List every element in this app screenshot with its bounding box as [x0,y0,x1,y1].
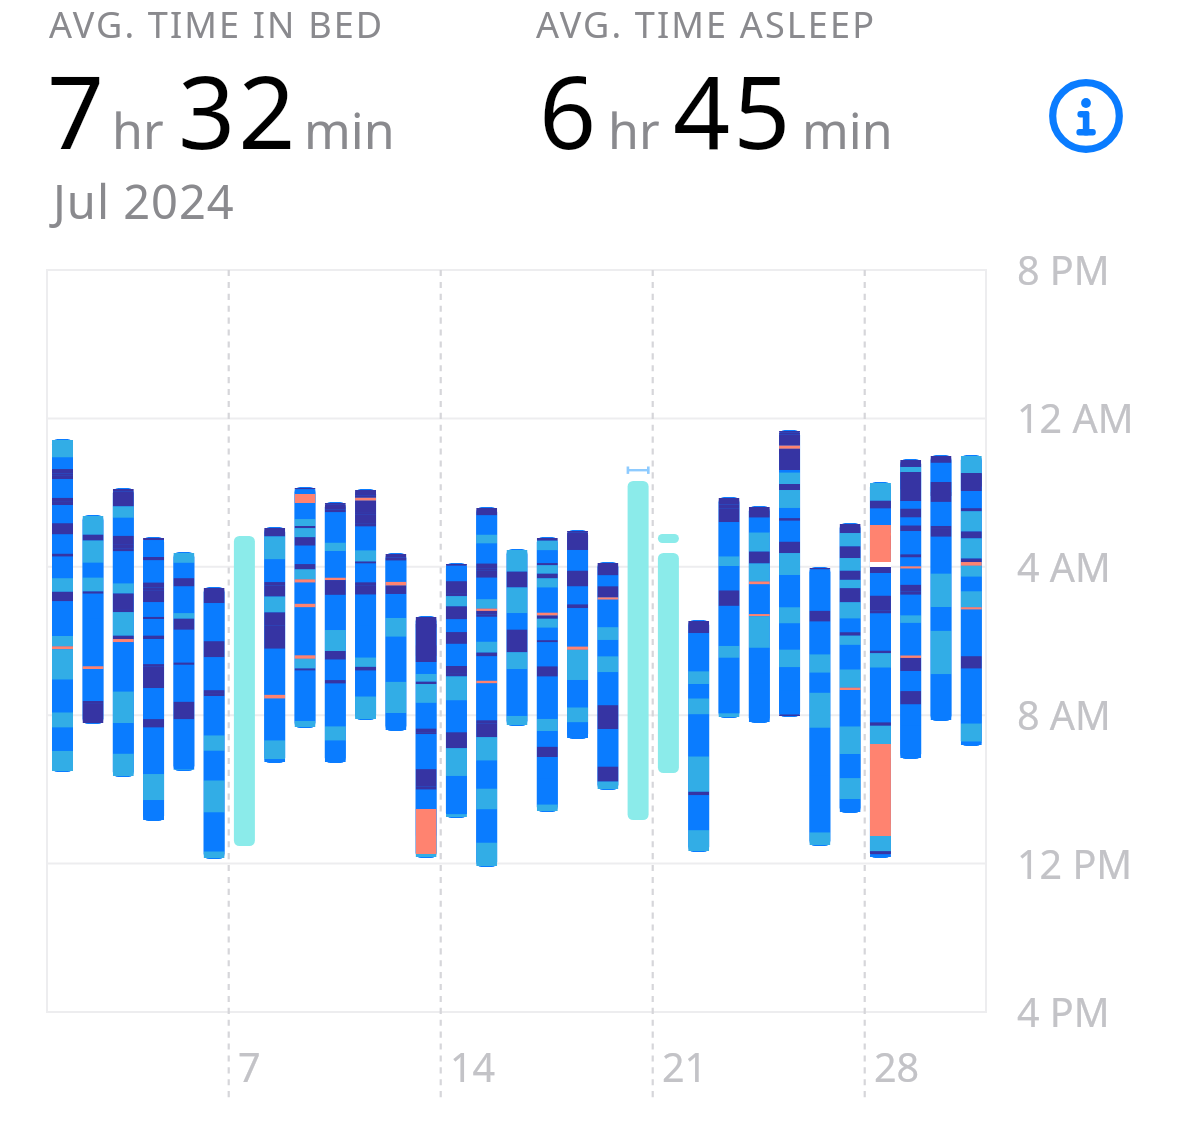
staticText: 12 AM [1017,391,1134,445]
staticText: 4 PM [1017,985,1110,1039]
staticText: min [802,96,893,164]
staticText: AVG. TIME ASLEEP [536,0,877,49]
staticText: 8 AM [1017,688,1111,742]
staticText: 12 PM [1017,837,1133,891]
button[interactable]: Average time in bed 7 hr 32 min, Jul 202… [40,4,510,229]
staticText: 21 [662,1040,708,1094]
staticText: 14 [450,1040,496,1094]
staticText: 32 [178,42,299,178]
staticText: 4 AM [1017,540,1111,594]
staticText: 7 [238,1040,261,1094]
staticText: 45 [673,42,794,178]
staticText: hr [608,96,660,164]
staticText: hr [112,96,164,164]
staticText: 7 [47,42,105,178]
button[interactable]: Information [1049,79,1123,153]
button[interactable]: Sleep chart for July 2024 [47,270,986,1012]
staticText: AVG. TIME IN BED [49,0,385,49]
staticText: 28 [874,1040,920,1094]
staticText: Jul 2024 [53,169,235,233]
button[interactable]: Average time asleep 6 hr 45 min [528,4,928,164]
staticText: min [304,96,395,164]
staticText: 8 PM [1017,243,1110,297]
staticText: 6 [539,42,597,178]
